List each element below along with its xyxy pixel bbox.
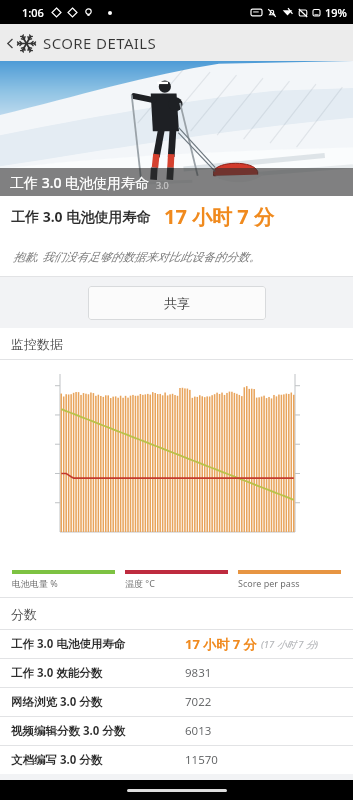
button[interactable]: 工作 3.0 电池使用寿命 <box>0 630 353 658</box>
staticText: 监控数据 <box>11 336 63 352</box>
staticText: 电池电量 % <box>12 577 58 589</box>
button[interactable]: 共享 <box>88 286 266 320</box>
staticText: 17 小时 7 分 <box>164 203 274 230</box>
staticText: 1:06 <box>22 5 44 20</box>
staticText: 7022 <box>185 694 212 710</box>
staticText: 3.0 <box>156 179 169 191</box>
staticText: 工作 3.0 效能分数 <box>11 665 103 681</box>
button[interactable]: 网络浏览 3.0 分数 <box>0 688 353 716</box>
staticText: 共享 <box>164 295 190 311</box>
staticText: 视频编辑分数 3.0 分数 <box>11 723 126 739</box>
staticText: 19% <box>325 5 347 20</box>
staticText: 11570 <box>185 752 218 768</box>
button[interactable]: Back <box>3 36 17 50</box>
staticText: 17 小时 7 分 <box>185 635 257 653</box>
staticText: 工作 3.0 电池使用寿命 <box>10 173 150 192</box>
staticText: (17 小时 7 分) <box>261 638 319 651</box>
staticText: 网络浏览 3.0 分数 <box>11 694 103 710</box>
staticText: 抱歉, 我们没有足够的数据来对比此设备的分数。 <box>13 249 261 265</box>
staticText: 工作 3.0 电池使用寿命 <box>11 636 126 652</box>
staticText: 文档编写 3.0 分数 <box>11 752 103 768</box>
button[interactable]: 视频编辑分数 3.0 分数 <box>0 717 353 745</box>
staticText: 9831 <box>185 665 212 681</box>
staticText: SCORE DETAILS <box>43 33 157 53</box>
button[interactable]: 工作 3.0 效能分数 <box>0 659 353 687</box>
staticText: 工作 3.0 电池使用寿命 <box>11 207 151 226</box>
staticText: 6013 <box>185 723 212 739</box>
staticText: 温度 °C <box>125 577 155 589</box>
staticText: Score per pass <box>238 577 300 589</box>
staticText: 分数 <box>11 606 37 622</box>
button[interactable]: 文档编写 3.0 分数 <box>0 746 353 774</box>
